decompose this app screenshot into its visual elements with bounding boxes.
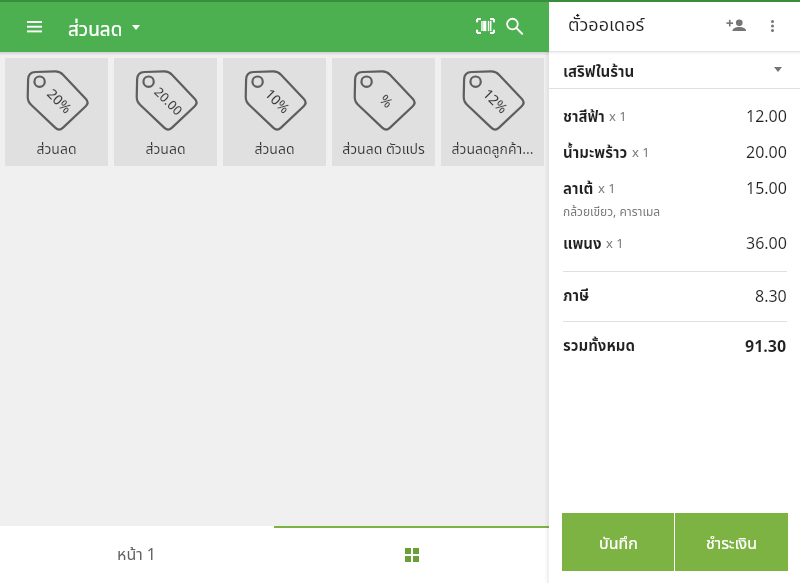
- button[interactable]: บันทึก: [562, 513, 674, 571]
- button[interactable]: ชาสีฟ้า: [563, 99, 787, 135]
- button[interactable]: 20.00: [114, 58, 217, 166]
- staticText: รวมทั้งหมด: [563, 335, 635, 358]
- staticText: x 1: [609, 107, 627, 127]
- staticText: ตั๋วออเดอร์: [568, 12, 645, 39]
- staticText: น้ำมะพร้าว: [563, 142, 628, 165]
- staticText: บันทึก: [599, 532, 638, 556]
- button[interactable]: แพนง: [563, 226, 787, 262]
- button[interactable]: หน้า 1: [0, 526, 274, 583]
- staticText: กล้วยเขียว, คาราเมล: [563, 203, 661, 221]
- staticText: หน้า 1: [117, 543, 157, 567]
- staticText: เสริฟในร้าน: [563, 61, 635, 84]
- button[interactable]: เสริฟในร้าน: [549, 51, 800, 88]
- staticText: ชาสีฟ้า: [563, 106, 605, 129]
- staticText: ชำระเงิน: [706, 532, 757, 556]
- button[interactable]: Grid view: [274, 526, 549, 583]
- staticText: 8.30: [755, 285, 787, 309]
- button[interactable]: ส่วนลด: [68, 0, 148, 52]
- button[interactable]: 20%: [5, 58, 108, 166]
- staticText: 15.00: [746, 177, 787, 201]
- button[interactable]: Add customer: [718, 0, 754, 51]
- staticText: 20.00: [746, 141, 787, 165]
- staticText: 12.00: [746, 105, 787, 129]
- staticText: ส่วนลด: [145, 139, 186, 160]
- staticText: x 1: [598, 179, 616, 199]
- button[interactable]: Search: [500, 0, 529, 52]
- button[interactable]: น้ำมะพร้าว: [563, 135, 787, 171]
- button[interactable]: 12%: [441, 58, 544, 166]
- staticText: ส่วนลด: [254, 139, 295, 160]
- button[interactable]: ชำระเงิน: [675, 513, 788, 571]
- staticText: ส่วนลดลูกค้า...: [451, 139, 534, 160]
- button[interactable]: %: [332, 58, 435, 166]
- staticText: ภาษี: [563, 285, 590, 308]
- staticText: ส่วนลด ตัวแปร: [342, 139, 425, 160]
- staticText: ส่วนลด: [36, 139, 77, 160]
- button[interactable]: ลาเต้: [563, 171, 787, 225]
- staticText: 20.00: [149, 83, 187, 121]
- staticText: 12%: [478, 84, 512, 119]
- button[interactable]: Menu: [0, 0, 68, 52]
- staticText: ลาเต้: [563, 178, 594, 201]
- staticText: ส่วนลด: [68, 16, 123, 45]
- staticText: 10%: [260, 84, 294, 119]
- staticText: 20%: [42, 84, 76, 119]
- button[interactable]: Scan barcode: [471, 0, 500, 52]
- staticText: %: [374, 90, 398, 113]
- staticText: แพนง: [563, 233, 602, 256]
- staticText: 36.00: [746, 232, 787, 256]
- button[interactable]: More options: [754, 0, 790, 51]
- staticText: 91.30: [745, 335, 787, 359]
- button[interactable]: 10%: [223, 58, 326, 166]
- staticText: x 1: [606, 234, 624, 254]
- staticText: x 1: [632, 143, 650, 163]
